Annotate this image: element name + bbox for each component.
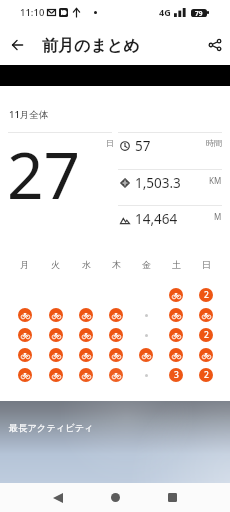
- staticText: 火: [51, 259, 60, 270]
- button[interactable]: Back: [45, 485, 70, 510]
- staticText: 最長アクティビティ: [9, 422, 94, 434]
- button[interactable]: 1,503.3: [118, 169, 222, 204]
- button[interactable]: Ride: [109, 328, 123, 342]
- button[interactable]: Ride: [109, 348, 123, 362]
- staticText: 79: [195, 9, 203, 17]
- staticText: 金: [142, 259, 151, 270]
- staticText: 木: [112, 259, 121, 270]
- button[interactable]: Ride: [79, 368, 93, 382]
- staticText: KM: [209, 175, 222, 186]
- button[interactable]: Share: [202, 32, 227, 57]
- staticText: 1,503.3: [135, 174, 181, 192]
- staticText: 2: [204, 369, 209, 381]
- button[interactable]: Ride: [49, 308, 63, 322]
- button[interactable]: Ride: [169, 288, 183, 302]
- button[interactable]: Rides 2: [199, 288, 213, 302]
- button[interactable]: Rides 2: [199, 368, 213, 382]
- button[interactable]: 14,464: [118, 205, 222, 240]
- button[interactable]: Ride: [109, 368, 123, 382]
- staticText: 前月のまとめ: [42, 36, 140, 56]
- button[interactable]: Ride: [79, 348, 93, 362]
- staticText: 4G: [159, 6, 171, 18]
- button[interactable]: Back: [5, 32, 30, 57]
- button[interactable]: Ride: [49, 368, 63, 382]
- staticText: 3: [174, 369, 179, 381]
- button[interactable]: Home: [103, 485, 128, 510]
- staticText: 日: [202, 259, 211, 270]
- button[interactable]: Ride: [109, 308, 123, 322]
- button[interactable]: Ride: [18, 308, 32, 322]
- button[interactable]: Ride: [18, 368, 32, 382]
- staticText: 11:10: [20, 6, 45, 19]
- button[interactable]: Ride: [79, 308, 93, 322]
- staticText: 水: [82, 259, 91, 270]
- staticText: 27: [7, 131, 81, 218]
- button[interactable]: Ride: [169, 328, 183, 342]
- button[interactable]: Ride: [199, 308, 213, 322]
- staticText: 14,464: [135, 210, 178, 228]
- button[interactable]: Rides 2: [199, 328, 213, 342]
- button[interactable]: Ride: [199, 348, 213, 362]
- staticText: M: [214, 211, 222, 222]
- button[interactable]: 最長アクティビティ: [0, 401, 230, 483]
- staticText: 2: [204, 329, 209, 341]
- staticText: 11月全体: [9, 108, 49, 121]
- button[interactable]: Ride: [139, 348, 153, 362]
- button[interactable]: 57: [118, 132, 222, 167]
- staticText: 日: [106, 138, 114, 148]
- button[interactable]: Recents: [160, 485, 185, 510]
- staticText: 土: [172, 259, 181, 270]
- button[interactable]: Ride: [169, 348, 183, 362]
- button[interactable]: Ride: [49, 348, 63, 362]
- staticText: 57: [135, 137, 151, 155]
- button[interactable]: Ride: [79, 328, 93, 342]
- button[interactable]: Ride: [169, 308, 183, 322]
- staticText: 2: [204, 289, 209, 301]
- staticText: 時間: [206, 138, 222, 148]
- button[interactable]: Ride: [18, 348, 32, 362]
- button[interactable]: Ride: [18, 328, 32, 342]
- staticText: 月: [20, 259, 29, 270]
- button[interactable]: Rides 3: [169, 368, 183, 382]
- button[interactable]: Ride: [49, 328, 63, 342]
